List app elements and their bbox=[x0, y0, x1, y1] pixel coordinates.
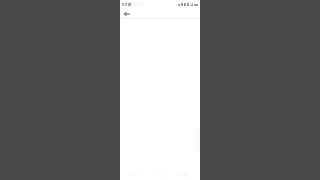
button[interactable]: Recent apps bbox=[181, 172, 188, 179]
button[interactable]: Back bbox=[122, 9, 131, 18]
